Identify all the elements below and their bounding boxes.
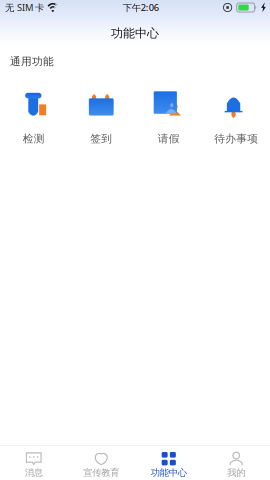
button[interactable]: 消息 bbox=[0, 452, 67, 478]
staticText: 通用功能 bbox=[10, 55, 54, 68]
staticText: 无 SIM 卡 bbox=[5, 1, 44, 14]
staticText: 功能中心 bbox=[151, 467, 187, 478]
staticText: 宣传教育 bbox=[83, 467, 119, 478]
button[interactable]: 功能中心 bbox=[135, 452, 202, 478]
staticText: 消息 bbox=[25, 467, 43, 478]
button[interactable]: 检测 bbox=[0, 68, 67, 153]
button[interactable]: 我的 bbox=[202, 452, 270, 478]
staticText: 下午2:06 bbox=[123, 1, 159, 14]
button[interactable]: 待办事项 bbox=[202, 68, 270, 153]
button[interactable]: 宣传教育 bbox=[67, 452, 135, 478]
staticText: 我的 bbox=[227, 467, 245, 478]
button[interactable]: 签到 bbox=[67, 68, 135, 153]
staticText: 检测 bbox=[23, 132, 45, 145]
staticText: 功能中心 bbox=[111, 26, 159, 41]
staticText: 请假 bbox=[158, 132, 180, 145]
staticText: 待办事项 bbox=[214, 132, 258, 145]
button[interactable]: 请假 bbox=[135, 68, 202, 153]
staticText: 签到 bbox=[90, 132, 112, 145]
